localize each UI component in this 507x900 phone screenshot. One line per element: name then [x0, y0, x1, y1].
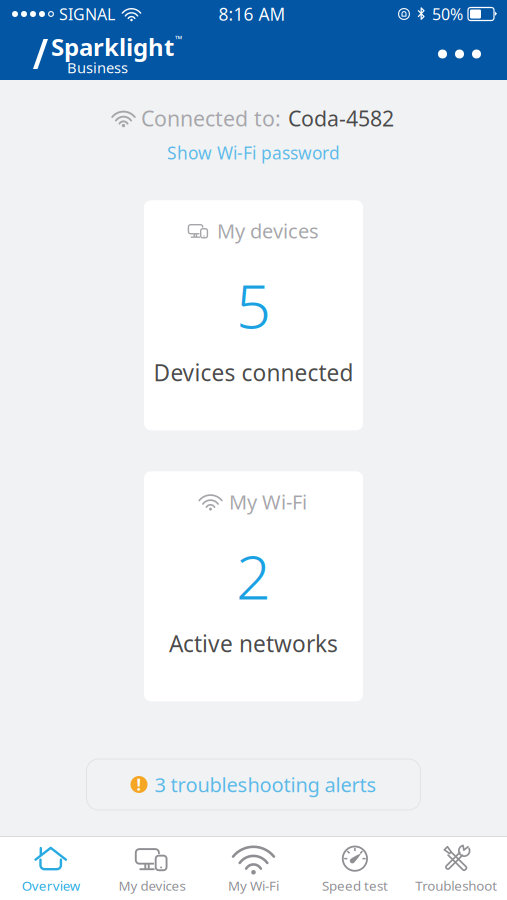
- staticText: Speed test: [322, 877, 388, 894]
- staticText: 3 troubleshooting alerts: [154, 771, 376, 798]
- staticText: Connected to:: [141, 104, 281, 132]
- staticText: Coda-4582: [288, 104, 394, 132]
- staticText: ™: [175, 33, 182, 45]
- staticText: Active networks: [169, 628, 338, 658]
- staticText: !: [136, 774, 141, 795]
- staticText: My Wi-Fi: [229, 488, 307, 515]
- button[interactable]: My devices: [144, 200, 363, 430]
- button[interactable]: Troubleshoot: [406, 837, 507, 900]
- staticText: 2: [236, 535, 271, 616]
- staticText: Devices connected: [153, 357, 353, 387]
- staticText: My devices: [217, 217, 319, 244]
- button[interactable]: More options: [422, 33, 497, 74]
- button[interactable]: My Wi-Fi: [203, 837, 304, 900]
- staticText: My Wi-Fi: [228, 877, 279, 894]
- button[interactable]: My Wi-Fi: [144, 471, 363, 701]
- staticText: Show Wi-Fi password: [167, 141, 340, 164]
- button[interactable]: My devices: [101, 837, 203, 900]
- button[interactable]: Speed test: [304, 837, 406, 900]
- staticText: 5: [236, 264, 271, 345]
- staticText: 50%: [432, 3, 463, 25]
- button[interactable]: !: [86, 759, 420, 810]
- staticText: SIGNAL: [59, 3, 115, 25]
- staticText: Business: [67, 58, 128, 77]
- staticText: My devices: [119, 877, 186, 894]
- staticText: 8:16 AM: [218, 2, 285, 25]
- staticText: Troubleshoot: [415, 877, 497, 894]
- staticText: Overview: [22, 877, 80, 894]
- button[interactable]: Show Wi-Fi password: [159, 136, 348, 169]
- button[interactable]: Overview: [0, 837, 101, 900]
- staticText: Sparklight: [51, 31, 174, 63]
